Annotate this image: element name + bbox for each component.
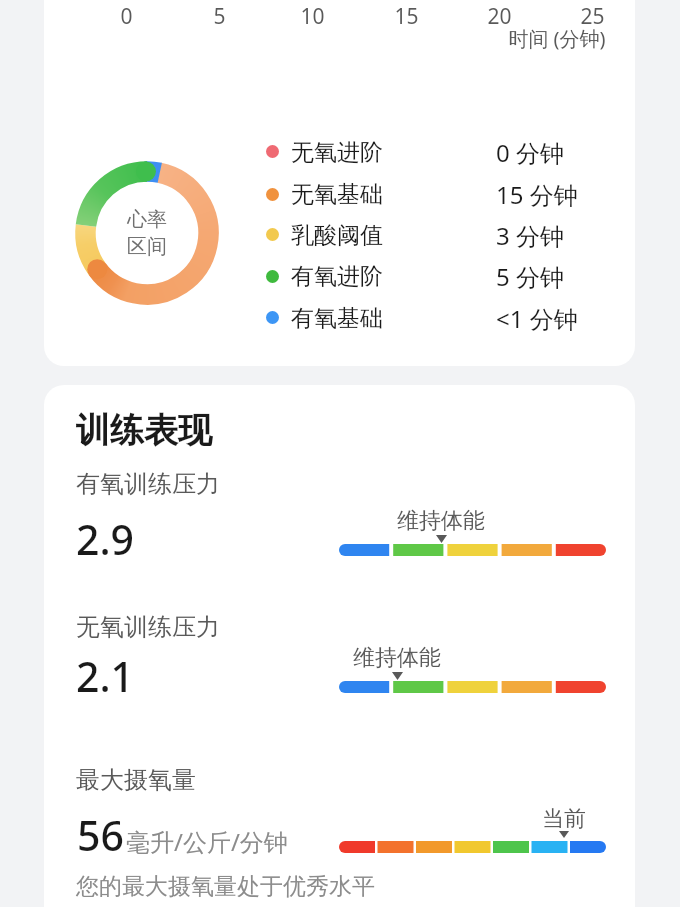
staticText: 2.1: [76, 648, 135, 704]
staticText: 乳酸阈值: [291, 221, 383, 250]
staticText: 3 分钟: [496, 219, 564, 252]
staticText: 维持体能: [353, 644, 441, 672]
staticText: 您的最大摄氧量处于优秀水平: [76, 872, 375, 901]
staticText: 有氧训练压力: [76, 469, 220, 499]
staticText: 无氧进阶: [291, 138, 383, 167]
staticText: 当前: [542, 805, 586, 833]
staticText: 有氧进阶: [291, 262, 383, 291]
staticText: 10: [300, 2, 325, 31]
staticText: 5 分钟: [496, 260, 564, 293]
staticText: 15 分钟: [496, 178, 578, 211]
staticText: 训练表现: [76, 409, 212, 452]
staticText: 25: [580, 2, 605, 31]
staticText: 最大摄氧量: [76, 765, 196, 795]
staticText: 心率: [127, 207, 167, 232]
staticText: 0: [120, 2, 133, 31]
staticText: 0 分钟: [496, 136, 564, 169]
staticText: 有氧基础: [291, 304, 383, 333]
staticText: 区间: [127, 234, 167, 259]
staticText: 时间 (分钟): [508, 25, 606, 52]
staticText: 维持体能: [397, 507, 485, 535]
staticText: 无氧训练压力: [76, 612, 220, 642]
staticText: 56: [77, 807, 124, 863]
staticText: 毫升/公斤/分钟: [126, 825, 288, 858]
staticText: 5: [213, 2, 226, 31]
staticText: 无氧基础: [291, 180, 383, 209]
staticText: 15: [394, 2, 419, 31]
staticText: 20: [487, 2, 512, 31]
staticText: 2.9: [76, 511, 135, 567]
staticText: <1 分钟: [496, 302, 578, 335]
